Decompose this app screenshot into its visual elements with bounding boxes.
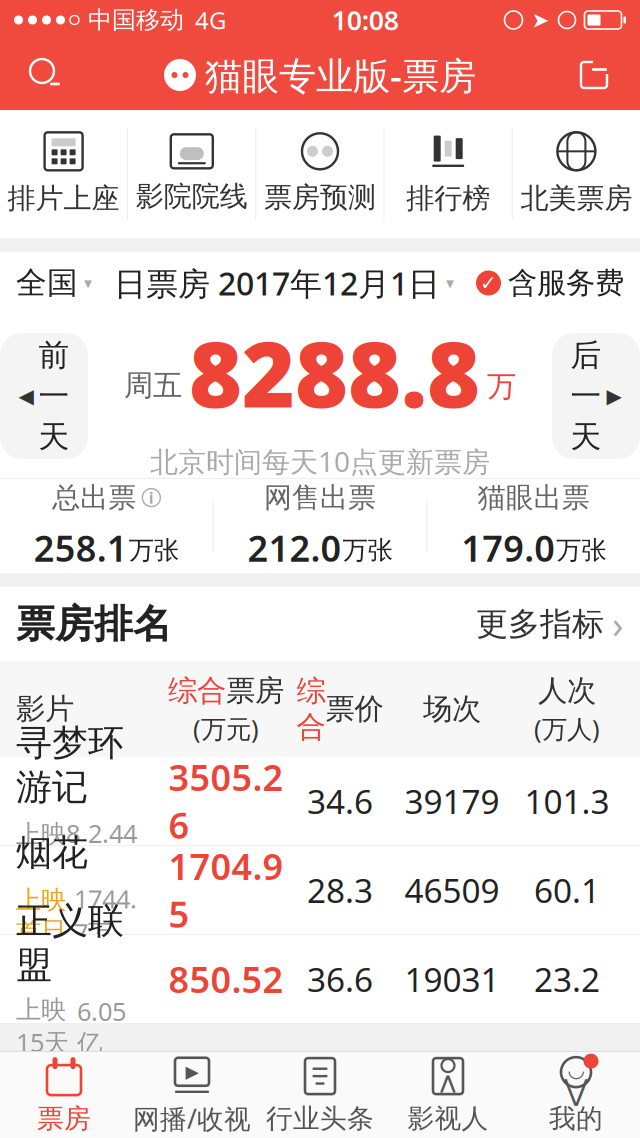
staticText: 上映首日 <box>16 884 66 947</box>
staticText: (万人) <box>534 712 600 745</box>
button[interactable]: 日票房 2017年12月1日 <box>114 250 454 316</box>
staticText: 正义联盟 <box>16 899 124 987</box>
staticText: 36.6 <box>307 957 373 1001</box>
staticText: 2.44亿 <box>88 816 137 881</box>
staticText: 票房排名 <box>16 600 172 648</box>
button[interactable]: ⋀ <box>384 1052 512 1138</box>
staticText: 寻梦环游记 <box>16 721 124 809</box>
staticText: 猫眼专业版-票房 <box>205 50 476 100</box>
button[interactable]: 前一天 <box>0 333 88 459</box>
staticText: ⋁ <box>564 1073 588 1107</box>
staticText: 影院院线 <box>136 179 248 214</box>
staticText: › <box>612 599 624 649</box>
staticText: 综合 <box>296 673 325 745</box>
staticText: ▶ <box>606 385 621 407</box>
button[interactable]: 排行榜 <box>385 110 512 238</box>
button[interactable]: ▶ <box>128 1052 256 1138</box>
staticText: 上映8天 <box>16 816 80 881</box>
staticText: 网播/收视 <box>133 1101 251 1136</box>
button[interactable]: 行业头条 <box>256 1052 384 1138</box>
staticText: 一 <box>38 377 69 415</box>
staticText: ◀ <box>18 385 33 407</box>
staticText: 周五 <box>124 367 182 403</box>
staticText: 8288.8 <box>189 312 480 433</box>
staticText: 北美票房 <box>520 181 632 216</box>
staticText: 猫眼出票 <box>478 480 590 515</box>
button[interactable]: 票房 <box>0 1052 128 1138</box>
staticText: 4G <box>195 4 226 36</box>
staticText: 含服务费 <box>508 265 624 301</box>
staticText: 19031 <box>404 957 499 1001</box>
staticText: 101.3 <box>524 779 609 823</box>
staticText: 6.05亿 <box>77 994 126 1059</box>
staticText: 上映15天 <box>16 994 69 1059</box>
staticText: 票房预测 <box>264 180 376 215</box>
staticText: 10:08 <box>332 2 399 38</box>
button[interactable]: 票房预测 <box>256 110 384 238</box>
staticText: 后 <box>570 336 601 374</box>
staticText: 全国 <box>16 264 78 302</box>
staticText: 23.2 <box>534 957 600 1001</box>
staticText: 场次 <box>423 691 481 727</box>
button[interactable]: 搜索 <box>16 45 76 105</box>
staticText: (万元) <box>193 712 259 745</box>
staticText: ◡ <box>568 1059 583 1081</box>
staticText: 万张 <box>342 535 392 566</box>
staticText: ➤ <box>531 8 549 32</box>
staticText: ▾ <box>446 274 454 292</box>
staticText: 212.0 <box>247 524 341 572</box>
staticText: ✓ <box>480 272 497 294</box>
staticText: 39179 <box>404 779 499 823</box>
staticText: 北京时间每天10点更新票房 <box>150 443 490 480</box>
staticText: 票房 <box>37 1102 91 1135</box>
staticText: 850.52 <box>168 955 283 1003</box>
button[interactable]: 排片上座 <box>0 110 127 238</box>
button[interactable]: 正义联盟 <box>0 935 640 1024</box>
staticText: 人次 <box>538 673 596 709</box>
button[interactable]: 寻梦环游记 <box>0 757 640 846</box>
button[interactable]: 影院院线 <box>128 110 255 238</box>
staticText: 日票房 2017年12月1日 <box>114 262 440 304</box>
staticText: 46509 <box>404 868 499 912</box>
button[interactable]: ✓ <box>476 253 624 313</box>
button[interactable]: 更多指标 <box>476 589 624 659</box>
staticText: 179.0 <box>461 524 555 572</box>
staticText: 3505.26 <box>168 753 283 849</box>
staticText: 更多指标 <box>476 604 604 644</box>
staticText: 1744.7万 <box>74 882 137 949</box>
staticText: 28.3 <box>307 868 373 912</box>
staticText: 一 <box>570 377 601 415</box>
staticText: 综合 <box>168 673 226 709</box>
staticText: ▾ <box>84 274 92 292</box>
button[interactable]: ◡ <box>512 1052 640 1138</box>
staticText: ▶ <box>185 1062 198 1082</box>
staticText: 天 <box>38 418 69 455</box>
staticText: 万张 <box>556 535 606 566</box>
staticText: 行业头条 <box>266 1102 374 1135</box>
staticText: 烟花 <box>16 831 88 875</box>
button[interactable]: 后一天 <box>552 333 640 459</box>
staticText: ⋀ <box>440 1072 456 1093</box>
staticText: 网售出票 <box>264 480 376 515</box>
staticText: 影视人 <box>407 1102 488 1135</box>
staticText: 34.6 <box>307 779 373 823</box>
staticText: i <box>149 487 154 508</box>
button[interactable]: 全国 <box>16 252 92 314</box>
staticText: 总出票 <box>52 480 136 515</box>
staticText: 前 <box>38 336 69 374</box>
staticText: 258.1 <box>34 524 128 572</box>
staticText: 票房 <box>226 673 284 709</box>
button[interactable]: 北美票房 <box>513 110 640 238</box>
button[interactable]: 烟花 <box>0 846 640 935</box>
staticText: 排行榜 <box>406 181 490 216</box>
staticText: 60.1 <box>534 868 600 912</box>
staticText: 天 <box>570 418 601 455</box>
staticText: 排片上座 <box>8 181 120 216</box>
button[interactable]: 分享 <box>564 45 624 105</box>
staticText: 我的 <box>549 1102 603 1135</box>
staticText: 万张 <box>129 535 179 566</box>
staticText: 票价 <box>325 691 383 727</box>
staticText: 中国移动 <box>88 5 184 35</box>
staticText: 1704.95 <box>168 842 283 938</box>
staticText: 影片 <box>16 691 74 727</box>
